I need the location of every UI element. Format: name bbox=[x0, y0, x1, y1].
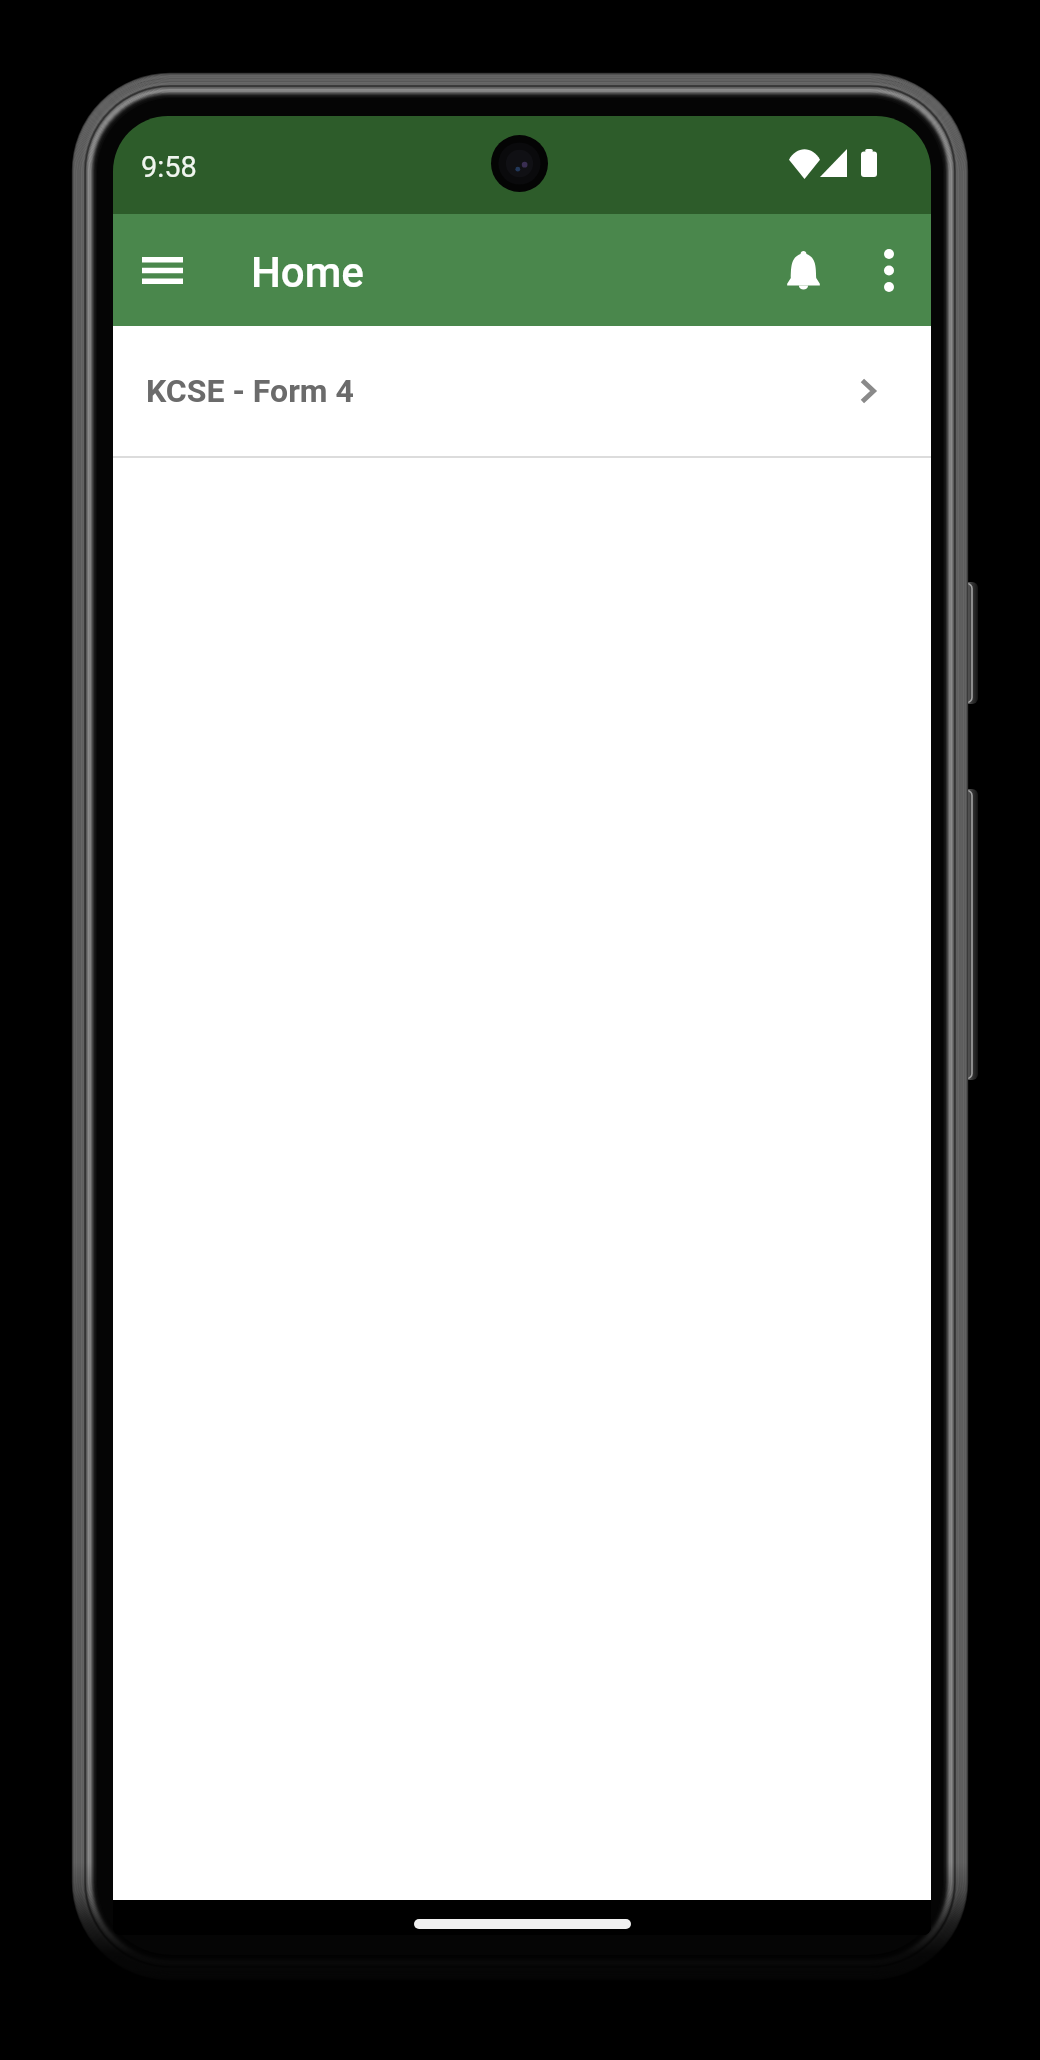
staticText: 9:58 bbox=[141, 150, 197, 184]
staticText: Home bbox=[251, 248, 364, 297]
button[interactable]: KCSE - Form 4 bbox=[113, 326, 931, 456]
button[interactable]: Notifications bbox=[767, 234, 839, 306]
button[interactable]: More options bbox=[853, 234, 925, 306]
button[interactable]: Open navigation menu bbox=[126, 234, 198, 306]
staticText: KCSE - Form 4 bbox=[146, 372, 354, 410]
button[interactable]: Home gesture bar bbox=[414, 1919, 631, 1929]
